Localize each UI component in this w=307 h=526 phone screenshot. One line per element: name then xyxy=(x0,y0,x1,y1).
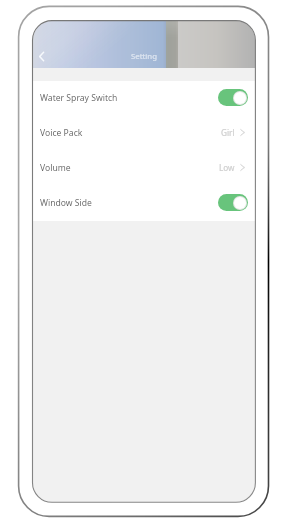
button[interactable]: Voice Pack xyxy=(33,116,255,151)
staticText: Low xyxy=(219,162,235,173)
button[interactable]: Window Side xyxy=(33,186,255,221)
staticText: Voice Pack xyxy=(40,127,83,139)
button[interactable]: Volume xyxy=(33,151,255,186)
staticText: Water Spray Switch xyxy=(40,92,118,104)
staticText: Girl xyxy=(221,127,235,138)
staticText: Window Side xyxy=(40,197,92,209)
button[interactable]: Water Spray Switch xyxy=(33,81,255,116)
button[interactable]: Back xyxy=(33,47,51,66)
staticText: Setting xyxy=(131,51,157,62)
staticText: Volume xyxy=(40,162,71,174)
